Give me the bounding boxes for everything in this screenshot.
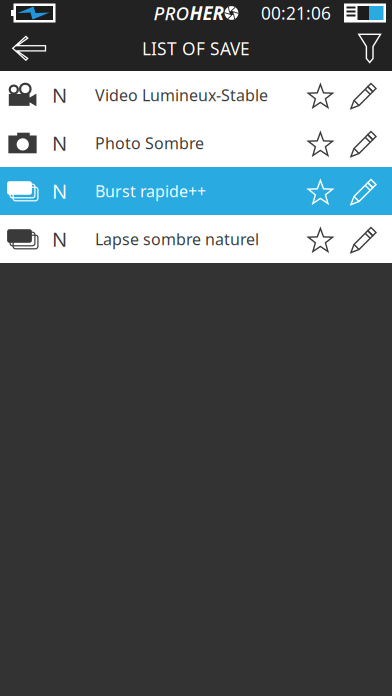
- staticText: N: [52, 82, 67, 108]
- button[interactable]: N: [0, 119, 392, 167]
- staticText: N: [52, 178, 67, 204]
- staticText: Lapse sombre naturel: [95, 228, 259, 250]
- staticText: HER: [189, 1, 224, 25]
- button[interactable]: N: [0, 215, 392, 263]
- staticText: PRO: [153, 1, 189, 25]
- staticText: N: [52, 226, 67, 252]
- staticText: Burst rapide++: [95, 180, 206, 202]
- staticText: Photo Sombre: [95, 132, 204, 154]
- staticText: 00:21:06: [261, 1, 331, 24]
- staticText: N: [52, 130, 67, 156]
- staticText: Video Lumineux-Stable: [95, 84, 268, 106]
- button[interactable]: N: [0, 71, 392, 119]
- button[interactable]: N: [0, 167, 392, 215]
- button[interactable]: Back: [0, 26, 58, 71]
- staticText: LIST OF SAVE: [142, 37, 250, 60]
- button[interactable]: Filter: [347, 26, 392, 71]
